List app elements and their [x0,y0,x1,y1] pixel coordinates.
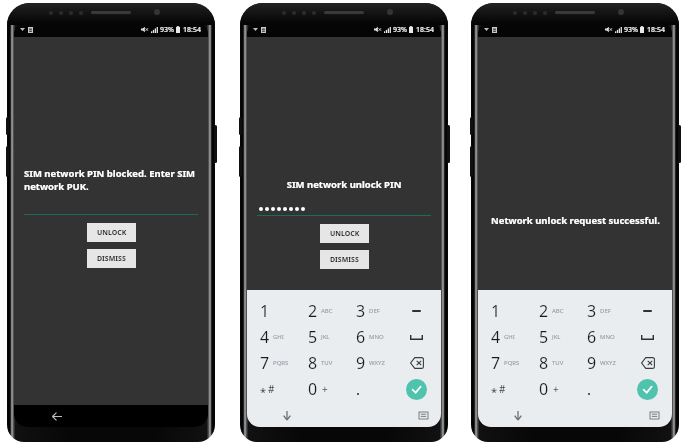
staticText: WXYZ [369,359,385,367]
button[interactable]: Hide keyboard [510,407,526,423]
staticText: 18:54 [647,25,665,35]
button[interactable]: Keyboard settings [647,408,661,422]
staticText: 1 [260,300,270,322]
staticText: 6 [356,326,366,348]
staticText: JKL [321,333,330,341]
staticText: + [322,382,328,396]
staticText: 18:54 [183,25,201,35]
staticText: 6 [587,326,597,348]
staticText: 3 [356,300,366,322]
button[interactable]: Space [392,324,441,350]
button[interactable]: 3 [343,298,392,324]
staticText: 2 [539,300,549,322]
staticText: DISMISS [330,255,359,265]
staticText: GHI [273,333,284,341]
button[interactable]: 2 [295,298,343,324]
staticText: 8 [539,352,549,374]
staticText: GHI [504,333,515,341]
staticText: Network unlock request successful. [491,214,660,227]
button[interactable]: 6 [574,324,623,350]
button[interactable]: DISMISS [87,249,136,268]
staticText: WXYZ [600,359,616,367]
button[interactable]: UNLOCK [320,224,369,243]
button[interactable]: 8 [295,350,343,376]
button[interactable]: Delete [623,350,672,376]
staticText: TUV [321,359,333,367]
staticText: 93% [624,25,638,35]
button[interactable]: Done [478,376,526,402]
button[interactable]: Dash [623,298,672,324]
button[interactable]: Done [343,376,392,402]
button[interactable]: 7 [247,350,295,376]
staticText: MNO [369,333,384,341]
button[interactable]: 6 [343,324,392,350]
staticText: 7 [260,352,270,374]
staticText: ABC [552,307,564,315]
button[interactable]: 9 [574,350,623,376]
button[interactable]: 8 [526,350,574,376]
button[interactable]: Done [247,376,295,402]
staticText: # [499,382,506,396]
button[interactable]: Hide keyboard [279,407,295,423]
staticText: + [553,382,559,396]
button[interactable]: 4 [247,324,295,350]
button[interactable]: UNLOCK [87,223,136,242]
staticText: TUV [552,359,564,367]
button[interactable]: 1 [478,298,526,324]
button[interactable]: Done [526,376,574,402]
staticText: UNLOCK [330,229,360,239]
button[interactable]: 9 [343,350,392,376]
button[interactable]: Done [574,376,623,402]
staticText: PQRS [504,359,520,367]
staticText: 5 [308,326,318,348]
staticText: ABC [321,307,333,315]
staticText: DEF [600,307,611,315]
button[interactable]: 5 [526,324,574,350]
staticText: 4 [260,326,270,348]
staticText: 9 [356,352,366,374]
button[interactable]: Done [392,376,441,402]
button[interactable]: Space [623,324,672,350]
staticText: 4 [491,326,501,348]
staticText: SIM network unlock PIN [257,178,431,191]
staticText: 93% [160,25,174,35]
button[interactable]: 2 [526,298,574,324]
staticText: JKL [552,333,561,341]
button[interactable]: 3 [574,298,623,324]
staticText: DEF [369,307,380,315]
staticText: 7 [491,352,501,374]
staticText: 9 [587,352,597,374]
staticText: 0 [539,378,549,400]
staticText: 1 [491,300,501,322]
staticText: SIM network PIN blocked. Enter SIM netwo… [24,167,198,193]
staticText: 5 [539,326,549,348]
staticText: DISMISS [97,254,126,264]
staticText: 2 [308,300,318,322]
button[interactable]: 7 [478,350,526,376]
button[interactable]: 1 [247,298,295,324]
button[interactable]: 5 [295,324,343,350]
staticText: * [260,384,266,399]
staticText: 18:54 [416,25,434,35]
button[interactable]: Done [623,376,672,402]
button[interactable]: Back [48,407,66,425]
staticText: UNLOCK [97,228,127,238]
button[interactable]: Delete [392,350,441,376]
staticText: MNO [600,333,615,341]
staticText: 3 [587,300,597,322]
button[interactable]: Done [295,376,343,402]
staticText: PQRS [273,359,289,367]
staticText: * [491,384,497,399]
button[interactable]: 4 [478,324,526,350]
button[interactable]: DISMISS [320,250,369,269]
button[interactable]: Dash [392,298,441,324]
staticText: 0 [308,378,318,400]
staticText: # [268,382,275,396]
staticText: 93% [393,25,407,35]
staticText: 8 [308,352,318,374]
button[interactable]: Keyboard settings [416,408,430,422]
